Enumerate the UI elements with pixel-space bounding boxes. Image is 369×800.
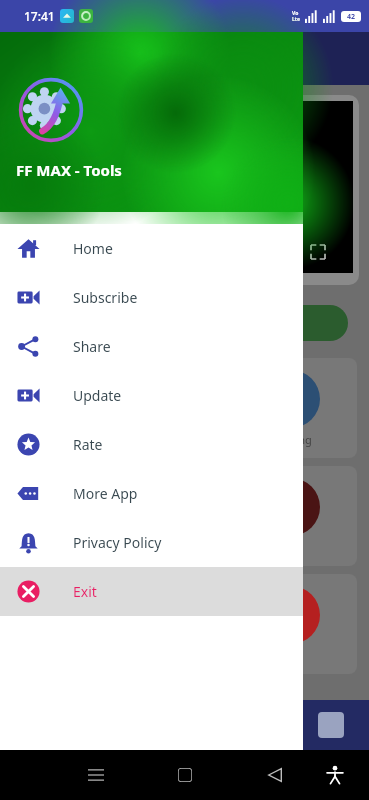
button[interactable]: [14, 305, 348, 341]
staticText: Subscribe: [73, 288, 138, 307]
staticText: Gaming: [271, 432, 312, 447]
button[interactable]: Rate: [0, 420, 303, 469]
staticText: 17:41: [24, 8, 55, 24]
button[interactable]: Back: [259, 759, 291, 791]
button[interactable]: Accessibility: [319, 759, 351, 791]
staticText: FF MAX - Tools: [16, 160, 122, 180]
staticText: Home: [73, 239, 113, 258]
button[interactable]: Gaming: [12, 358, 357, 458]
button[interactable]: Jash: [12, 574, 357, 674]
staticText: Update: [73, 386, 122, 405]
staticText: Vo Lte: [292, 10, 300, 23]
button[interactable]: Exit: [0, 567, 303, 616]
button[interactable]: Privacy Policy: [0, 518, 303, 567]
staticText: More App: [73, 484, 138, 503]
staticText: Rate: [73, 435, 103, 454]
button[interactable]: NL: [12, 466, 357, 566]
button[interactable]: Subscribe: [0, 273, 303, 322]
button[interactable]: More App: [0, 469, 303, 518]
button[interactable]: Home: [169, 759, 201, 791]
staticText: Privacy Policy: [73, 533, 162, 552]
staticText: 42: [347, 12, 356, 22]
staticText: Exit: [73, 582, 97, 601]
button[interactable]: Recent apps: [80, 759, 112, 791]
button[interactable]: Share: [0, 322, 303, 371]
button[interactable]: Update: [0, 371, 303, 420]
staticText: Share: [73, 337, 111, 356]
button[interactable]: Home: [0, 224, 303, 273]
